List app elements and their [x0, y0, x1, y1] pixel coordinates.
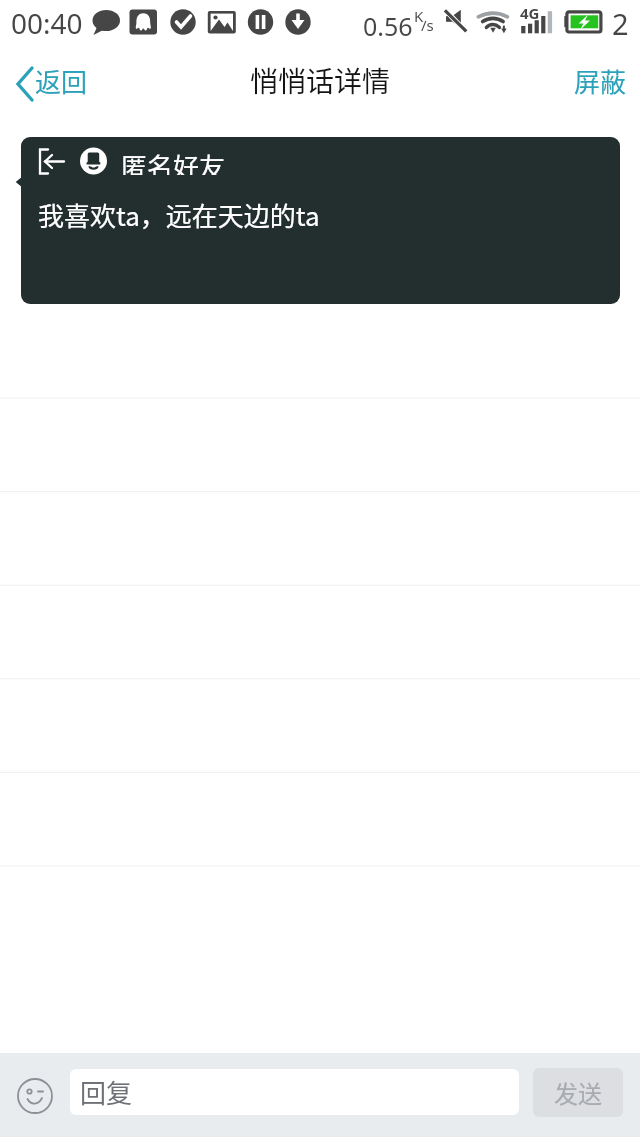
staticText: 回复 — [80, 1073, 133, 1111]
staticText: 发送 — [554, 1075, 602, 1110]
button[interactable]: Emoji — [8, 1069, 62, 1123]
staticText: 0.56 — [363, 9, 413, 43]
staticText: 屏蔽 — [574, 62, 627, 100]
staticText: 00:40 — [11, 4, 83, 42]
button[interactable]: 回复 — [70, 1069, 519, 1115]
staticText: 我喜欢ta，远在天边的ta — [38, 196, 320, 234]
button[interactable]: Anonymous — [21, 137, 620, 304]
staticText: 4G — [520, 3, 540, 23]
staticText: 返回 — [35, 62, 88, 100]
staticText: K — [414, 6, 424, 26]
button[interactable]: 发送 — [533, 1068, 623, 1117]
button[interactable]: 屏蔽 — [562, 55, 639, 107]
staticText: /s — [421, 15, 434, 35]
other: Anonymous — [38, 148, 65, 175]
button[interactable]: 返回 — [8, 54, 100, 106]
staticText: 悄悄话详情 — [250, 60, 391, 101]
staticText: 2 — [612, 4, 629, 43]
staticText: 匿名好友 — [121, 147, 226, 175]
